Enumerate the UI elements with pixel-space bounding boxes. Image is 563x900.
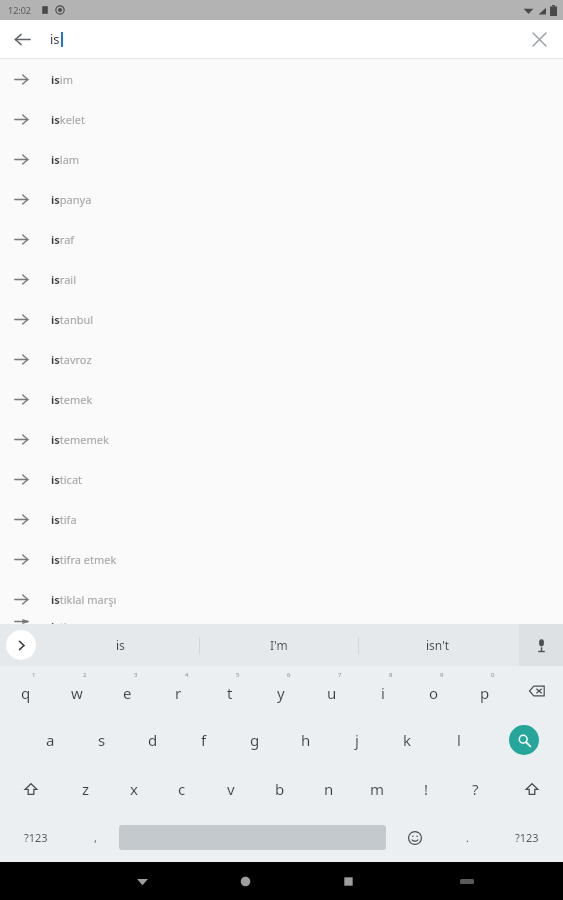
staticText: , xyxy=(94,830,97,845)
button[interactable]: ! xyxy=(402,764,451,813)
staticText: u xyxy=(327,683,337,703)
staticText: istifra etmek xyxy=(51,552,117,567)
button[interactable]: ispanya xyxy=(0,179,563,219)
staticText: isticat xyxy=(51,472,83,487)
staticText: t xyxy=(227,683,233,703)
button[interactable]: Voice input xyxy=(519,624,563,666)
button[interactable]: istiklal marşı xyxy=(0,579,563,619)
staticText: y xyxy=(277,683,285,703)
button[interactable]: ? xyxy=(451,764,500,813)
button[interactable]: I'm xyxy=(200,624,358,666)
button[interactable]: israil xyxy=(0,259,563,299)
staticText: 9 xyxy=(440,671,444,679)
staticText: n xyxy=(324,779,334,799)
button[interactable]: 4 xyxy=(153,666,204,715)
staticText: h xyxy=(301,730,311,750)
button[interactable]: istismar xyxy=(0,619,563,624)
staticText: p xyxy=(480,683,490,703)
staticText: e xyxy=(123,683,132,703)
staticText: 8 xyxy=(389,671,393,679)
staticText: israil xyxy=(51,272,76,287)
button[interactable]: israf xyxy=(0,219,563,259)
button[interactable]: k xyxy=(382,715,433,764)
button[interactable]: 3 xyxy=(102,666,153,715)
button[interactable]: Expand suggestions xyxy=(6,630,36,660)
staticText: istemek xyxy=(51,392,93,407)
staticText: 12:02 xyxy=(8,4,32,16)
button[interactable]: istifra etmek xyxy=(0,539,563,579)
button[interactable]: 5 xyxy=(204,666,255,715)
button[interactable]: v xyxy=(206,764,255,813)
button[interactable]: isticat xyxy=(0,459,563,499)
button[interactable]: Clear xyxy=(523,23,555,55)
button[interactable]: Shift xyxy=(0,764,62,813)
staticText: d xyxy=(148,730,158,750)
button[interactable]: l xyxy=(433,715,484,764)
button[interactable]: 9 xyxy=(408,666,459,715)
button[interactable]: Search xyxy=(484,715,563,764)
button[interactable]: Switch keyboard xyxy=(400,862,533,900)
staticText: g xyxy=(250,730,260,750)
button[interactable]: Backspace xyxy=(510,666,563,715)
button[interactable]: Back xyxy=(6,23,38,55)
button[interactable]: Hide keyboard xyxy=(91,862,194,900)
button[interactable]: 0 xyxy=(459,666,510,715)
button[interactable]: isim xyxy=(0,59,563,99)
staticText: istememek xyxy=(51,432,109,447)
staticText: f xyxy=(201,730,207,750)
staticText: b xyxy=(275,779,285,799)
staticText: I'm xyxy=(270,637,288,653)
button[interactable]: iskelet xyxy=(0,99,563,139)
button[interactable]: istememek xyxy=(0,419,563,459)
staticText: o xyxy=(429,683,439,703)
button[interactable]: Home xyxy=(194,862,297,900)
button[interactable]: ?123 xyxy=(0,813,71,862)
button[interactable]: 7 xyxy=(306,666,357,715)
staticText: . xyxy=(466,830,469,845)
button[interactable]: istavroz xyxy=(0,339,563,379)
button[interactable]: b xyxy=(255,764,304,813)
button[interactable]: n xyxy=(304,764,353,813)
button[interactable]: z xyxy=(62,764,110,813)
staticText: q xyxy=(21,683,31,703)
button[interactable]: 1 xyxy=(0,666,51,715)
button[interactable]: x xyxy=(110,764,158,813)
button[interactable]: Emoji xyxy=(386,813,443,862)
staticText: k xyxy=(403,730,412,750)
button[interactable]: 2 xyxy=(51,666,102,715)
staticText: ?123 xyxy=(24,830,48,845)
button[interactable]: istanbul xyxy=(0,299,563,339)
button[interactable]: s xyxy=(76,715,127,764)
staticText: 6 xyxy=(287,671,291,679)
button[interactable]: istifa xyxy=(0,499,563,539)
button[interactable]: Recents xyxy=(297,862,400,900)
button[interactable]: g xyxy=(229,715,280,764)
staticText: a xyxy=(46,730,55,750)
staticText: 4 xyxy=(185,671,189,679)
button[interactable]: j xyxy=(331,715,382,764)
button[interactable]: Shift xyxy=(500,764,563,813)
button[interactable]: 8 xyxy=(357,666,408,715)
button[interactable]: , xyxy=(71,813,119,862)
button[interactable]: c xyxy=(158,764,206,813)
button[interactable]: 6 xyxy=(255,666,306,715)
staticText: israf xyxy=(51,232,75,247)
button[interactable]: a xyxy=(25,715,76,764)
button[interactable]: . xyxy=(443,813,491,862)
staticText: w xyxy=(71,683,83,703)
staticText: ? xyxy=(472,779,479,799)
button[interactable]: istemek xyxy=(0,379,563,419)
button[interactable]: isn't xyxy=(359,624,517,666)
staticText: s xyxy=(98,730,106,750)
button[interactable]: m xyxy=(353,764,402,813)
staticText: ispanya xyxy=(51,192,92,207)
button[interactable]: islam xyxy=(0,139,563,179)
button[interactable]: is xyxy=(42,624,199,666)
button[interactable]: h xyxy=(280,715,331,764)
button[interactable]: ?123 xyxy=(491,813,563,862)
staticText: 5 xyxy=(236,671,240,679)
button[interactable]: f xyxy=(178,715,229,764)
staticText: c xyxy=(178,779,186,799)
button[interactable]: d xyxy=(127,715,178,764)
